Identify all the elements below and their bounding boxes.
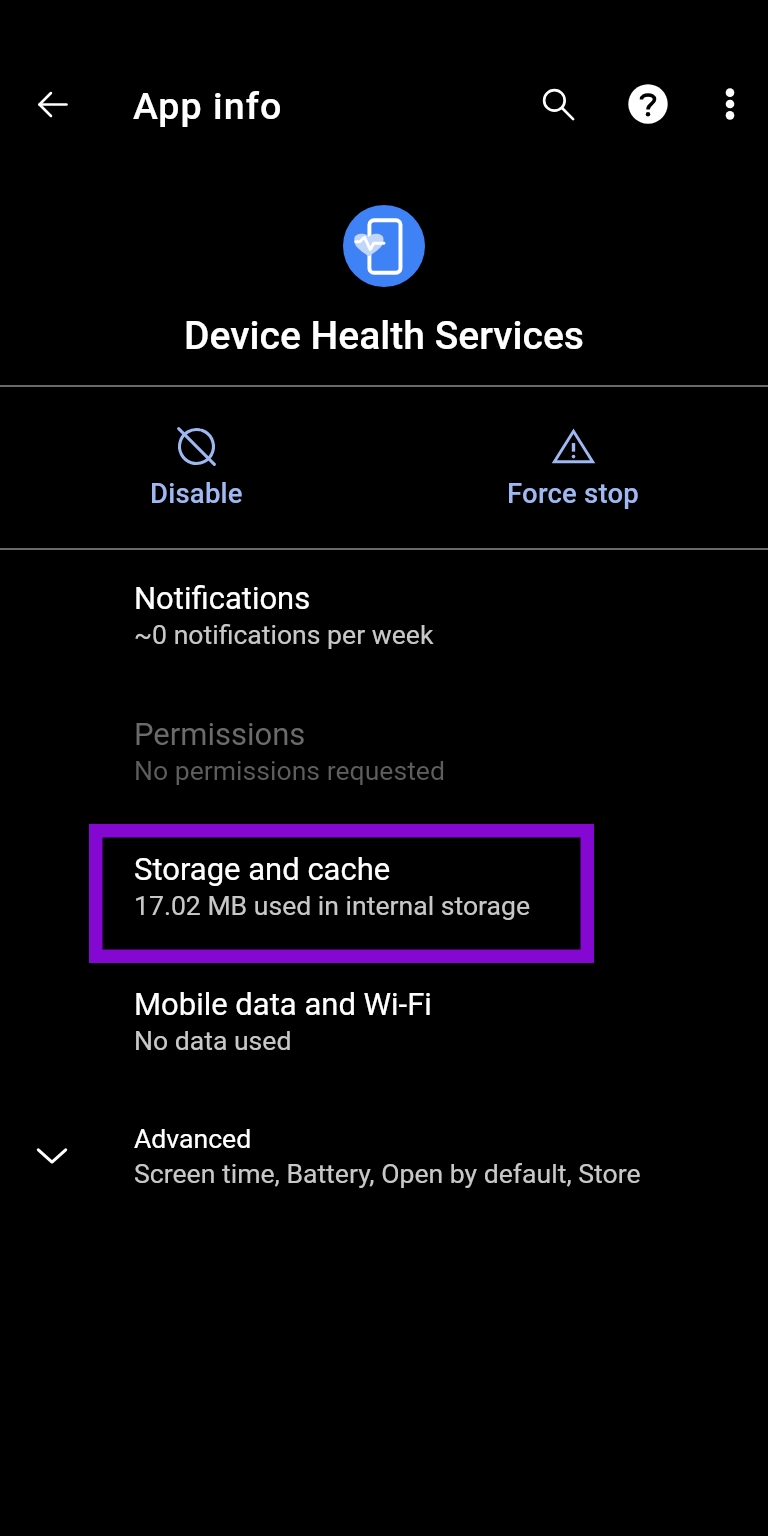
button[interactable]: Mobile data and Wi-Fi bbox=[134, 986, 734, 1058]
staticText: App info bbox=[133, 84, 283, 128]
staticText: Advanced bbox=[134, 1123, 252, 1154]
button[interactable]: Expand advanced bbox=[16, 1119, 88, 1191]
staticText: Device Health Services bbox=[0, 313, 768, 359]
button[interactable]: More options bbox=[694, 68, 766, 140]
button[interactable]: Notifications bbox=[134, 580, 734, 652]
button[interactable] bbox=[89, 824, 594, 963]
staticText: Disable bbox=[150, 477, 243, 509]
button[interactable]: Disable bbox=[66, 389, 326, 547]
button[interactable]: Permissions bbox=[134, 716, 734, 788]
button[interactable]: Storage and cache bbox=[134, 851, 734, 923]
button[interactable]: Advanced bbox=[134, 1123, 734, 1195]
staticText: Storage and cache bbox=[134, 851, 391, 887]
staticText: No permissions requested bbox=[134, 755, 445, 786]
button[interactable]: Force stop bbox=[443, 389, 703, 547]
button[interactable]: Back bbox=[16, 68, 88, 140]
staticText: Permissions bbox=[134, 716, 306, 752]
staticText: Force stop bbox=[507, 477, 640, 509]
staticText: 17.02 MB used in internal storage bbox=[134, 890, 531, 921]
staticText: No data used bbox=[134, 1025, 292, 1056]
button[interactable]: Search bbox=[522, 68, 594, 140]
staticText: Mobile data and Wi-Fi bbox=[134, 986, 432, 1022]
button[interactable]: Help bbox=[612, 68, 684, 140]
staticText: Screen time, Battery, Open by default, S… bbox=[134, 1158, 641, 1189]
staticText: ~0 notifications per week bbox=[134, 619, 434, 650]
staticText: Notifications bbox=[134, 580, 311, 616]
